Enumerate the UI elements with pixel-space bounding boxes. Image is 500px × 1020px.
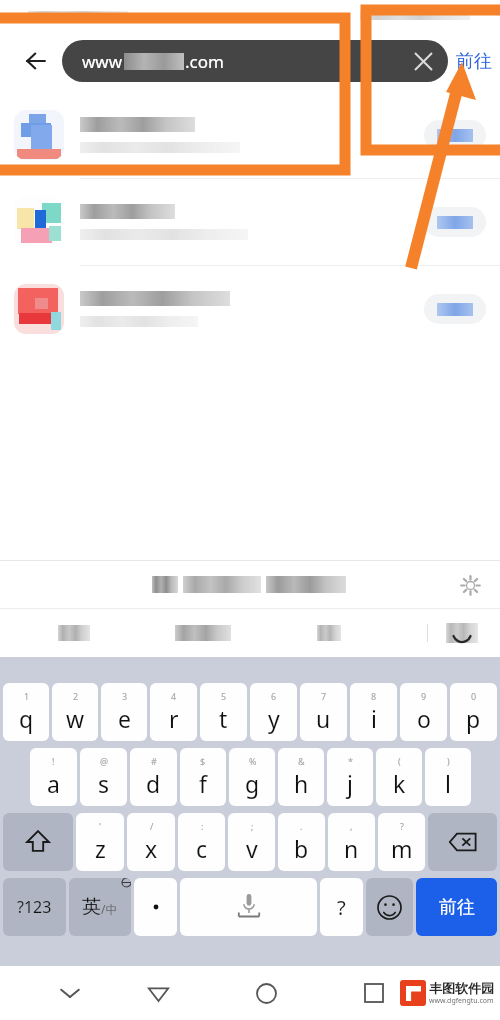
staticText: 9 xyxy=(421,690,427,702)
button[interactable]: Keyboard settings xyxy=(450,565,490,605)
staticText: # xyxy=(151,755,157,767)
button[interactable]: 2 xyxy=(52,683,98,741)
button[interactable]: # xyxy=(130,748,177,806)
staticText: v xyxy=(246,833,258,864)
staticText: $ xyxy=(200,755,206,767)
button[interactable]: 前往 xyxy=(456,39,492,83)
button[interactable]: Back xyxy=(136,971,180,1015)
staticText: l xyxy=(445,768,451,799)
staticText: . xyxy=(300,820,303,832)
staticText: www xyxy=(82,50,123,73)
button[interactable]: . xyxy=(278,813,325,871)
staticText: 1 xyxy=(24,690,30,702)
staticText: /中 xyxy=(101,901,118,917)
staticText: ) xyxy=(447,755,450,767)
button[interactable]: Backspace xyxy=(428,813,497,871)
button[interactable]: Clear xyxy=(402,40,444,82)
staticText: , xyxy=(350,820,353,832)
staticText: 4 xyxy=(171,690,177,702)
button[interactable]: 1 xyxy=(3,683,49,741)
staticText: a xyxy=(47,768,60,799)
staticText: r xyxy=(169,703,179,734)
staticText: ? xyxy=(337,894,346,921)
staticText: u xyxy=(316,703,331,734)
button[interactable]: Hide keyboard xyxy=(48,971,92,1015)
button[interactable]: 9 xyxy=(400,683,447,741)
staticText: g xyxy=(245,768,260,799)
staticText: i xyxy=(371,703,377,734)
button[interactable] xyxy=(134,878,177,936)
button[interactable]: 5 xyxy=(200,683,247,741)
button[interactable]: : xyxy=(178,813,225,871)
button[interactable]: Shift xyxy=(3,813,73,871)
button[interactable]: Open xyxy=(424,207,486,237)
button[interactable]: ? xyxy=(320,878,363,936)
button[interactable]: Open xyxy=(0,179,500,265)
staticText: t xyxy=(219,703,228,734)
button[interactable]: 6 xyxy=(250,683,297,741)
button[interactable]: Recents xyxy=(352,971,396,1015)
staticText: 6 xyxy=(271,690,277,702)
button[interactable]: ? xyxy=(378,813,425,871)
staticText: .com xyxy=(185,50,224,73)
button[interactable]: & xyxy=(278,748,324,806)
button[interactable]: Home xyxy=(244,971,288,1015)
button[interactable]: Open xyxy=(424,294,486,324)
button[interactable]: 7 xyxy=(300,683,347,741)
staticText: ! xyxy=(52,755,55,767)
staticText: y xyxy=(268,703,280,734)
staticText: j xyxy=(347,768,353,799)
staticText: b xyxy=(294,833,309,864)
button[interactable]: Emoji xyxy=(366,878,413,936)
staticText: ?123 xyxy=(17,896,52,918)
button[interactable]: ' xyxy=(76,813,124,871)
button[interactable]: Open xyxy=(424,120,486,150)
staticText: ( xyxy=(398,755,401,767)
staticText: 7 xyxy=(321,690,327,702)
staticText: o xyxy=(417,703,431,734)
button[interactable]: , xyxy=(328,813,375,871)
staticText: * xyxy=(348,755,353,767)
staticText: 英 xyxy=(82,895,101,919)
button[interactable]: ?123 xyxy=(3,878,66,936)
staticText: 2 xyxy=(73,690,79,702)
button[interactable]: * xyxy=(327,748,373,806)
button[interactable]: Back xyxy=(12,37,60,85)
button[interactable] xyxy=(180,878,317,936)
staticText: 前往 xyxy=(456,50,492,73)
staticText: n xyxy=(344,833,359,864)
staticText: 0 xyxy=(471,690,477,702)
staticText: @ xyxy=(100,755,109,767)
staticText: x xyxy=(145,833,158,864)
staticText: m xyxy=(391,833,413,864)
staticText: 丰图软件园 xyxy=(429,980,494,996)
button[interactable]: @ xyxy=(80,748,127,806)
staticText: ? xyxy=(400,820,404,832)
button[interactable]: www xyxy=(62,40,448,82)
button[interactable]: 8 xyxy=(350,683,397,741)
button[interactable]: Open xyxy=(0,266,500,352)
button[interactable]: ) xyxy=(425,748,471,806)
button[interactable]: 3 xyxy=(101,683,147,741)
staticText: % xyxy=(249,755,257,767)
button[interactable]: ( xyxy=(376,748,422,806)
staticText: ; xyxy=(251,820,254,832)
button[interactable]: ; xyxy=(228,813,275,871)
staticText: 3 xyxy=(122,690,128,702)
staticText: www.dgfengtu.com xyxy=(429,996,494,1006)
button[interactable]: / xyxy=(127,813,175,871)
staticText: w xyxy=(66,703,85,734)
staticText: / xyxy=(150,820,154,832)
staticText: ' xyxy=(99,820,102,832)
staticText: k xyxy=(393,768,406,799)
button[interactable]: $ xyxy=(180,748,226,806)
button[interactable]: ! xyxy=(30,748,77,806)
button[interactable]: Open xyxy=(0,92,500,178)
button[interactable]: 前往 xyxy=(416,878,497,936)
button[interactable]: 英 xyxy=(69,878,131,936)
staticText: 前往 xyxy=(439,896,475,919)
staticText: 5 xyxy=(221,690,227,702)
button[interactable]: 0 xyxy=(450,683,497,741)
button[interactable]: 4 xyxy=(150,683,197,741)
button[interactable]: % xyxy=(229,748,275,806)
